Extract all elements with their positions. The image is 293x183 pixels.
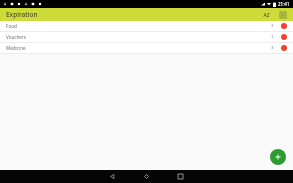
staticText: Expiration bbox=[6, 10, 38, 19]
button[interactable]: Home bbox=[141, 171, 152, 182]
button[interactable]: Back bbox=[107, 171, 118, 182]
staticText: Vouchers bbox=[6, 34, 271, 40]
button[interactable]: Vouchers bbox=[0, 32, 293, 42]
button[interactable]: Sort A to Z bbox=[261, 10, 271, 20]
staticText: 3 bbox=[271, 45, 274, 51]
button[interactable]: Recent apps bbox=[175, 171, 186, 182]
button[interactable]: Medicine bbox=[0, 43, 293, 53]
button[interactable]: Add item bbox=[270, 149, 286, 165]
staticText: 21:41 bbox=[278, 1, 290, 7]
button[interactable]: Food bbox=[0, 21, 293, 31]
staticText: AZ bbox=[263, 12, 270, 19]
staticText: Medicine bbox=[6, 45, 271, 51]
button[interactable]: More options bbox=[278, 10, 288, 20]
staticText: 1 bbox=[271, 34, 274, 40]
staticText: Food bbox=[6, 23, 271, 29]
staticText: 3 bbox=[271, 23, 274, 29]
